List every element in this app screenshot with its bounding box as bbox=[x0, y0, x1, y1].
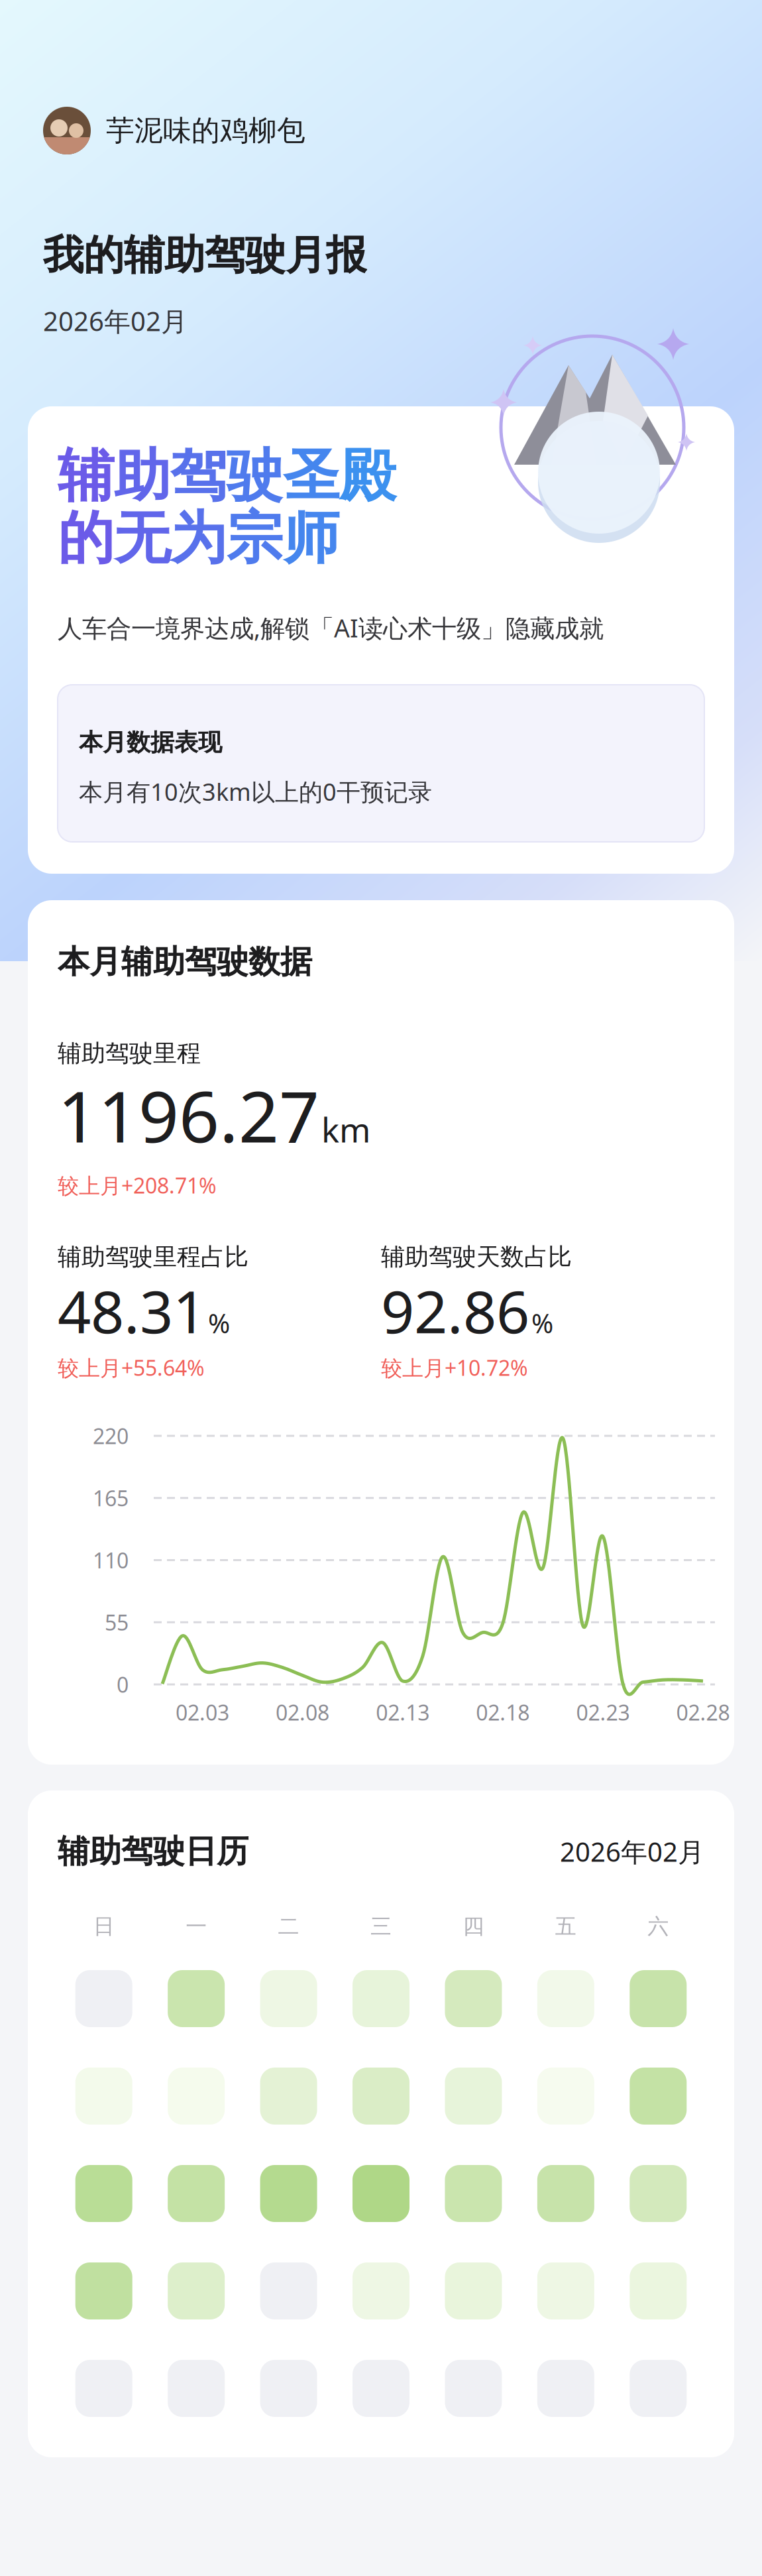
staticText: 四 bbox=[463, 1913, 484, 1939]
staticText: 五 bbox=[555, 1913, 576, 1939]
staticText: 芋泥味的鸡柳包 bbox=[106, 113, 305, 148]
staticText: 的 bbox=[58, 504, 114, 573]
staticText: 92.86 bbox=[381, 1272, 529, 1349]
staticText: 人车合一境界达成,解锁「AI读心术十级」隐藏成就 bbox=[58, 611, 604, 644]
staticText: 2026年02月 bbox=[43, 303, 188, 338]
staticText: 02.13 bbox=[376, 1698, 430, 1726]
staticText: 辅助驾驶里程 bbox=[58, 1039, 201, 1068]
staticText: 师 bbox=[283, 504, 339, 573]
staticText: 02.18 bbox=[476, 1698, 530, 1726]
staticText: 三 bbox=[370, 1913, 392, 1939]
staticText: 六 bbox=[648, 1913, 669, 1939]
staticText: 165 bbox=[93, 1484, 129, 1512]
staticText: 驾 bbox=[170, 441, 227, 511]
staticText: 02.28 bbox=[676, 1698, 730, 1726]
staticText: 殿 bbox=[339, 441, 396, 511]
staticText: 本月有10次3km以上的0干预记录 bbox=[79, 776, 432, 807]
staticText: 二 bbox=[278, 1913, 299, 1939]
staticText: 48.31 bbox=[58, 1272, 206, 1349]
staticText: 宗 bbox=[227, 504, 283, 573]
staticText: 55 bbox=[105, 1608, 129, 1636]
staticText: 较上月+10.72% bbox=[381, 1353, 528, 1382]
staticText: 较上月+208.71% bbox=[58, 1171, 217, 1199]
staticText: 02.08 bbox=[276, 1698, 329, 1726]
staticText: 2026年02月 bbox=[560, 1834, 704, 1869]
staticText: 本月辅助驾驶数据 bbox=[58, 942, 312, 981]
staticText: 为 bbox=[170, 504, 227, 573]
staticText: 我的辅助驾驶月报 bbox=[43, 230, 366, 280]
staticText: km bbox=[321, 1107, 370, 1152]
staticText: 较上月+55.64% bbox=[58, 1353, 205, 1382]
button[interactable]: 芋泥味的鸡柳包 bbox=[43, 107, 305, 154]
staticText: 驶 bbox=[227, 441, 283, 511]
staticText: 220 bbox=[93, 1422, 129, 1450]
staticText: 辅助驾驶天数占比 bbox=[381, 1242, 572, 1271]
staticText: 一 bbox=[186, 1913, 207, 1939]
staticText: 02.03 bbox=[176, 1698, 229, 1726]
staticText: 110 bbox=[93, 1546, 129, 1574]
staticText: % bbox=[531, 1305, 553, 1341]
staticText: 辅助驾驶日历 bbox=[58, 1832, 248, 1871]
staticText: 辅助驾驶里程占比 bbox=[58, 1242, 248, 1271]
staticText: 助 bbox=[114, 441, 170, 511]
staticText: 辅 bbox=[58, 441, 114, 511]
staticText: 1196.27 bbox=[58, 1068, 319, 1162]
staticText: 圣 bbox=[283, 441, 339, 511]
staticText: 无 bbox=[114, 504, 170, 573]
staticText: % bbox=[208, 1305, 230, 1341]
staticText: 0 bbox=[117, 1670, 129, 1699]
staticText: 本月数据表现 bbox=[79, 728, 222, 757]
staticText: 02.23 bbox=[576, 1698, 630, 1726]
staticText: 日 bbox=[93, 1913, 114, 1939]
